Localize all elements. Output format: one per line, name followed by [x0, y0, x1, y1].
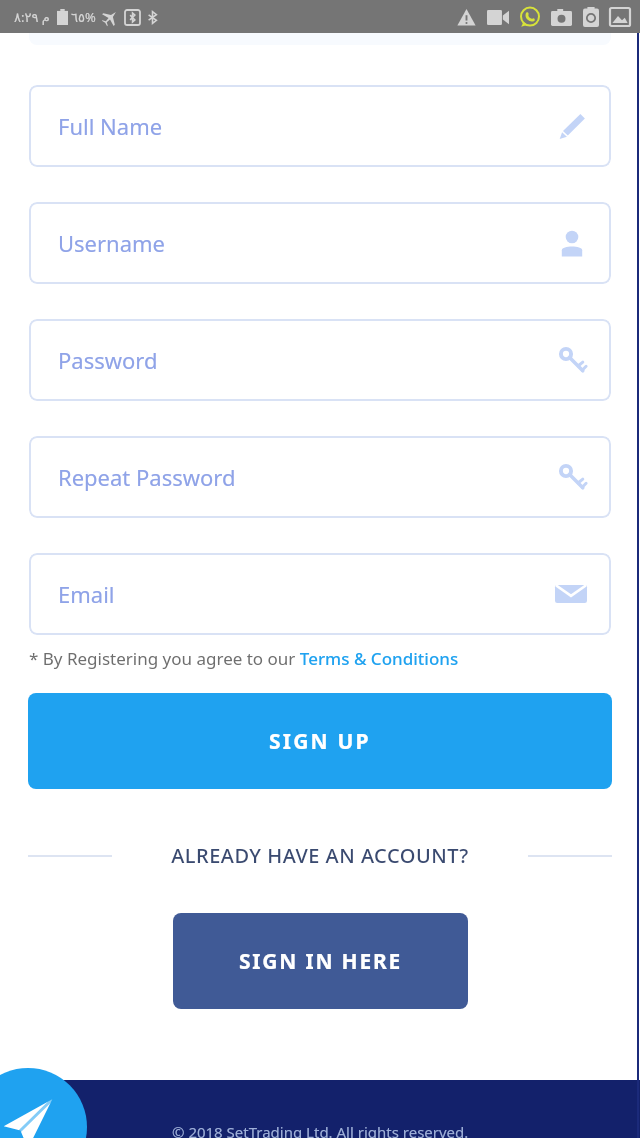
button[interactable]: Send message: [0, 1068, 87, 1138]
staticText: م ٨:٢٩: [14, 8, 50, 26]
button[interactable]: Username: [29, 202, 611, 284]
staticText: Repeat Password: [58, 462, 236, 492]
button[interactable]: Repeat Password: [29, 436, 611, 518]
staticText: ALREADY HAVE AN ACCOUNT?: [171, 842, 469, 869]
button[interactable]: * By Registering you agree to our Terms …: [29, 647, 611, 670]
staticText: SIGN IN HERE: [239, 947, 403, 976]
button[interactable]: Full Name: [29, 85, 611, 167]
button[interactable]: Email: [29, 553, 611, 635]
staticText: © 2018 SetTrading Ltd. All rights reserv…: [172, 1122, 469, 1138]
staticText: SIGN UP: [269, 727, 371, 756]
button[interactable]: SIGN IN HERE: [173, 913, 468, 1009]
button[interactable]: Password: [29, 319, 611, 401]
staticText: Username: [58, 228, 166, 258]
staticText: Email: [58, 579, 115, 609]
button[interactable]: SIGN UP: [28, 693, 612, 789]
staticText: ٦٥%: [71, 8, 96, 26]
staticText: * By Registering you agree to our Terms …: [29, 647, 459, 670]
staticText: Full Name: [58, 111, 163, 141]
staticText: Password: [58, 345, 158, 375]
